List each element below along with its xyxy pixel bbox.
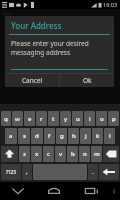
button[interactable]: q [1,111,11,126]
staticText: i [89,115,91,123]
staticText: y [64,115,68,123]
staticText: b [71,150,75,158]
button[interactable]: . [88,164,98,180]
staticText: 16:03 [103,1,118,8]
button[interactable]: u [72,111,83,126]
staticText: Cancel [22,76,43,85]
button[interactable]: l [104,128,115,144]
button[interactable]: n [79,146,90,162]
button[interactable]: Shift [1,146,18,162]
staticText: p [112,115,116,123]
button[interactable]: b [67,146,78,162]
button[interactable]: ?123 [1,164,21,180]
button[interactable]: x [31,146,42,162]
button[interactable]: i [84,111,95,126]
button[interactable]: , [22,164,32,180]
button[interactable]: Ok [60,74,114,87]
staticText: Ok [83,76,92,85]
staticText: a [9,132,13,140]
button[interactable]: a [5,128,17,144]
staticText: q [4,115,8,123]
button[interactable]: Home [36,182,72,200]
button[interactable]: g [56,128,67,144]
button[interactable]: o [96,111,107,126]
staticText: z [23,150,26,158]
button[interactable]: Cancel [5,74,59,87]
staticText: Your Address [11,20,62,31]
staticText: v [59,150,63,158]
button[interactable]: m [91,146,102,162]
button[interactable]: j [80,128,91,144]
staticText: o [100,115,104,123]
button[interactable]: k [92,128,103,144]
staticText: n [83,150,87,158]
staticText: ?123 [6,169,16,175]
button[interactable]: t [48,111,59,126]
staticText: . [92,168,94,176]
staticText: Please enter your desired messaging addr… [11,39,108,57]
button[interactable]: w [12,111,23,126]
button[interactable]: h [68,128,79,144]
staticText: d [35,132,39,140]
staticText: h [72,132,76,140]
staticText: g [60,132,64,140]
button[interactable] [11,62,108,70]
button[interactable]: Enter [99,164,119,180]
staticText: c [47,150,50,158]
button[interactable]: r [36,111,47,126]
button[interactable]: s [18,128,30,144]
button[interactable]: d [31,128,43,144]
staticText: f [48,132,51,140]
button[interactable]: Recents [72,182,108,200]
staticText: w [15,115,20,123]
button[interactable]: v [55,146,66,162]
button[interactable]: z [19,146,30,162]
button[interactable]: c [43,146,54,162]
staticText: m [94,150,100,158]
staticText: Bit... [3,10,18,20]
button[interactable]: Menu [108,182,120,200]
button[interactable]: Backspace [103,146,119,162]
button[interactable]: Back [0,182,36,200]
staticText: j [85,132,87,140]
button[interactable]: e [24,111,35,126]
staticText: k [96,132,100,140]
staticText: , [26,168,28,176]
staticText: t [52,115,55,123]
staticText: l [109,132,111,140]
staticText: e [28,115,32,123]
staticText: x [35,150,39,158]
button[interactable]: f [44,128,55,144]
staticText: r [40,115,43,123]
button[interactable]: y [60,111,71,126]
staticText: u [76,115,80,123]
staticText: s [23,132,26,140]
button[interactable]: p [108,111,119,126]
